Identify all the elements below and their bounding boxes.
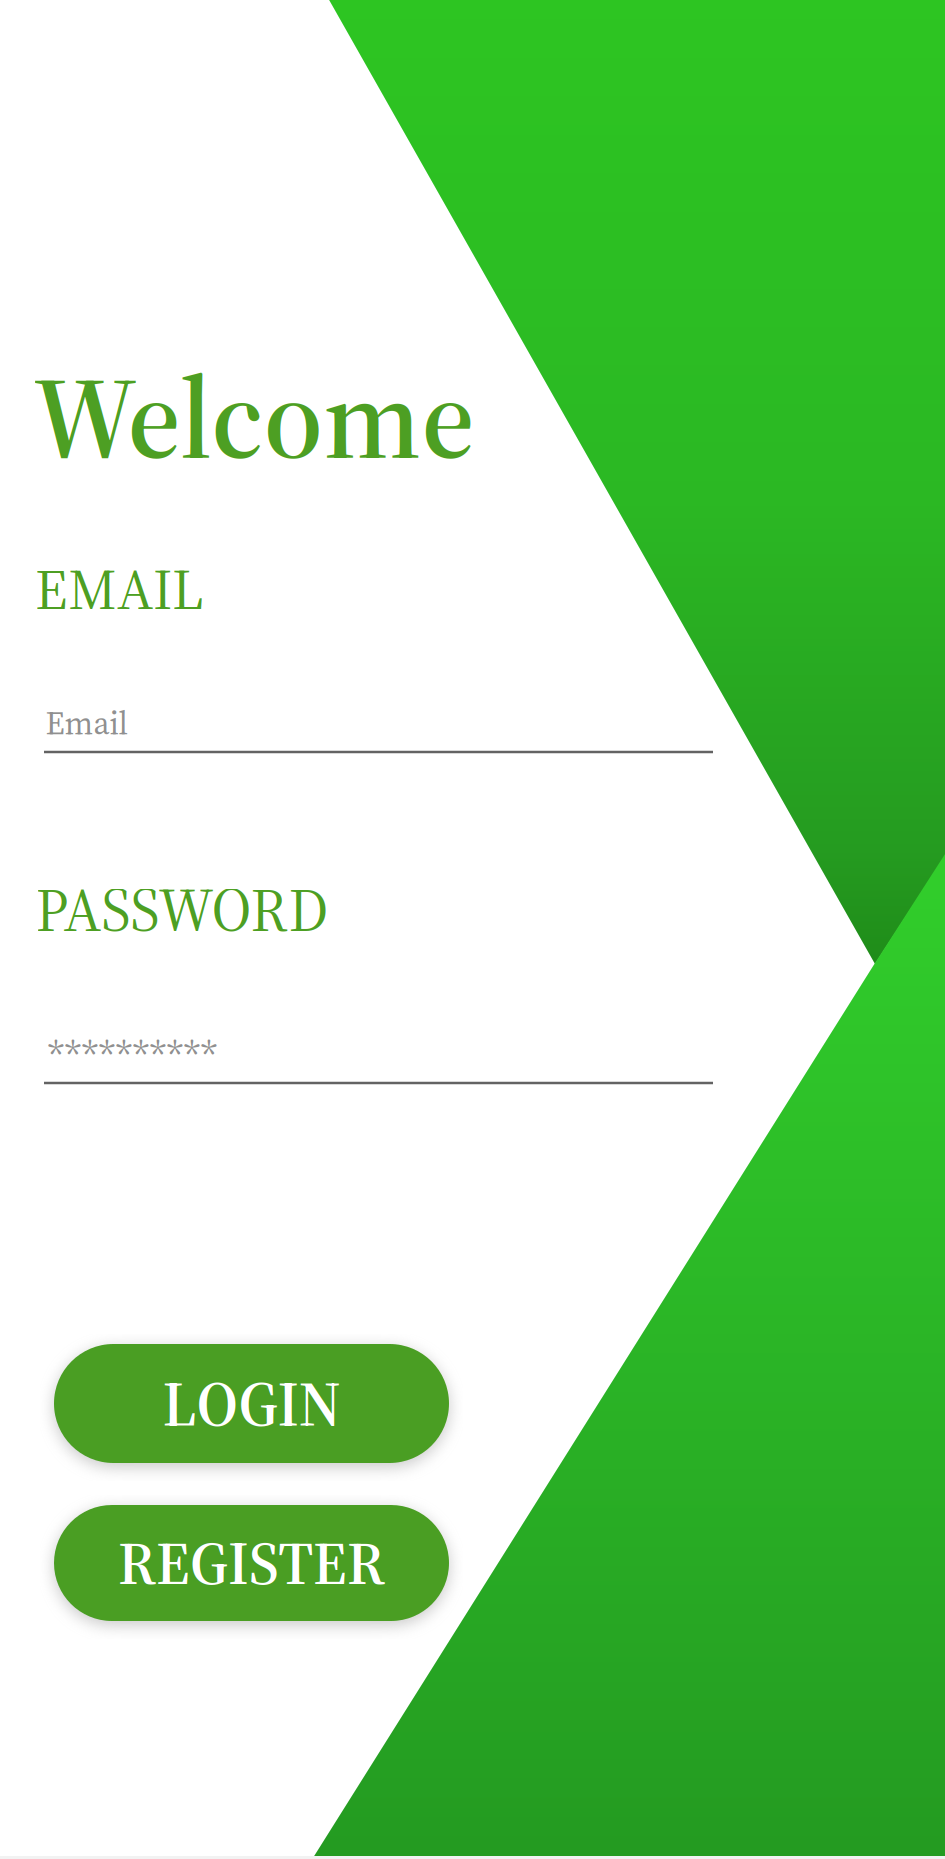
- staticText: LOGIN: [162, 1360, 340, 1446]
- button[interactable]: **********: [44, 1018, 713, 1104]
- staticText: Welcome: [33, 337, 475, 496]
- button[interactable]: REGISTER: [54, 1505, 449, 1621]
- staticText: EMAIL: [35, 550, 204, 628]
- staticText: REGISTER: [118, 1522, 385, 1604]
- staticText: **********: [47, 1028, 217, 1081]
- staticText: Email: [45, 701, 127, 745]
- button[interactable]: LOGIN: [54, 1344, 449, 1463]
- button[interactable]: Email: [44, 687, 713, 773]
- staticText: PASSWORD: [35, 869, 328, 951]
